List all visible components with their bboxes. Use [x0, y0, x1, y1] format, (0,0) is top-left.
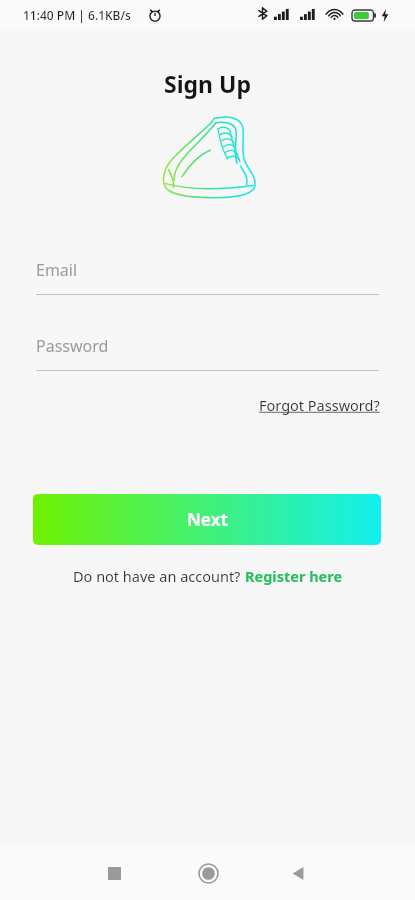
staticText: Register here: [245, 566, 343, 586]
button[interactable]: Password: [33, 333, 382, 373]
button[interactable]: Back: [278, 846, 318, 900]
staticText: Forgot Password?: [259, 395, 380, 415]
staticText: Next: [187, 508, 228, 531]
button[interactable]: Forgot Password?: [257, 392, 382, 418]
staticText: Do not have an account?: [73, 566, 245, 586]
staticText: Password: [36, 335, 109, 357]
button[interactable]: Next: [33, 494, 381, 545]
button[interactable]: Home: [188, 846, 228, 900]
other: Sneaker logo: [161, 115, 256, 203]
button[interactable]: Email: [33, 257, 382, 297]
button[interactable]: Recents: [94, 846, 134, 900]
staticText: Sign Up: [164, 68, 251, 99]
staticText: Email: [36, 259, 78, 281]
button[interactable]: Register here: [245, 566, 343, 586]
staticText: 11:40 PM | 6.1KB/s: [23, 7, 131, 23]
